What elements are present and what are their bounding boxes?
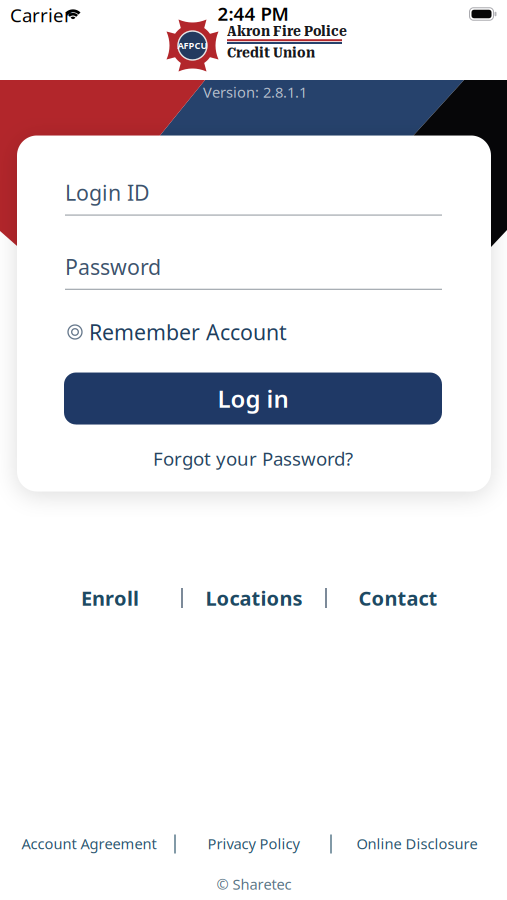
button[interactable]: Contact (358, 585, 437, 611)
button[interactable]: Login ID (65, 181, 442, 213)
staticText: Account Agreement (21, 834, 156, 853)
staticText: Privacy Policy (207, 834, 299, 853)
button[interactable]: Forgot your Password? (153, 446, 353, 471)
button[interactable]: Locations (205, 585, 302, 611)
button[interactable]: Account Agreement (21, 834, 156, 853)
staticText: Carrier (10, 3, 72, 27)
staticText: Login ID (65, 178, 150, 206)
staticText: Password (65, 252, 161, 281)
staticText: Akron Fire Police (227, 23, 347, 39)
staticText: Version: 2.8.1.1 (203, 82, 307, 102)
staticText: Contact (358, 585, 437, 611)
button[interactable]: Log in (64, 372, 442, 424)
staticText: 2:44 PM (217, 1, 288, 26)
staticText: Locations (205, 585, 302, 611)
staticText: Forgot your Password? (153, 446, 353, 471)
button[interactable]: Privacy Policy (207, 834, 299, 853)
button[interactable]: Remember Account (66, 319, 311, 345)
button[interactable]: Password (65, 255, 442, 287)
staticText: © Sharetec (216, 874, 291, 894)
staticText: Enroll (81, 585, 139, 611)
button[interactable]: Online Disclosure (356, 834, 477, 853)
staticText: AFPCU (177, 39, 207, 52)
staticText: Online Disclosure (356, 834, 477, 853)
staticText: Log in (217, 383, 288, 414)
staticText: Remember Account (89, 318, 287, 346)
staticText: Credit Union (227, 44, 315, 61)
button[interactable]: Enroll (81, 585, 139, 611)
